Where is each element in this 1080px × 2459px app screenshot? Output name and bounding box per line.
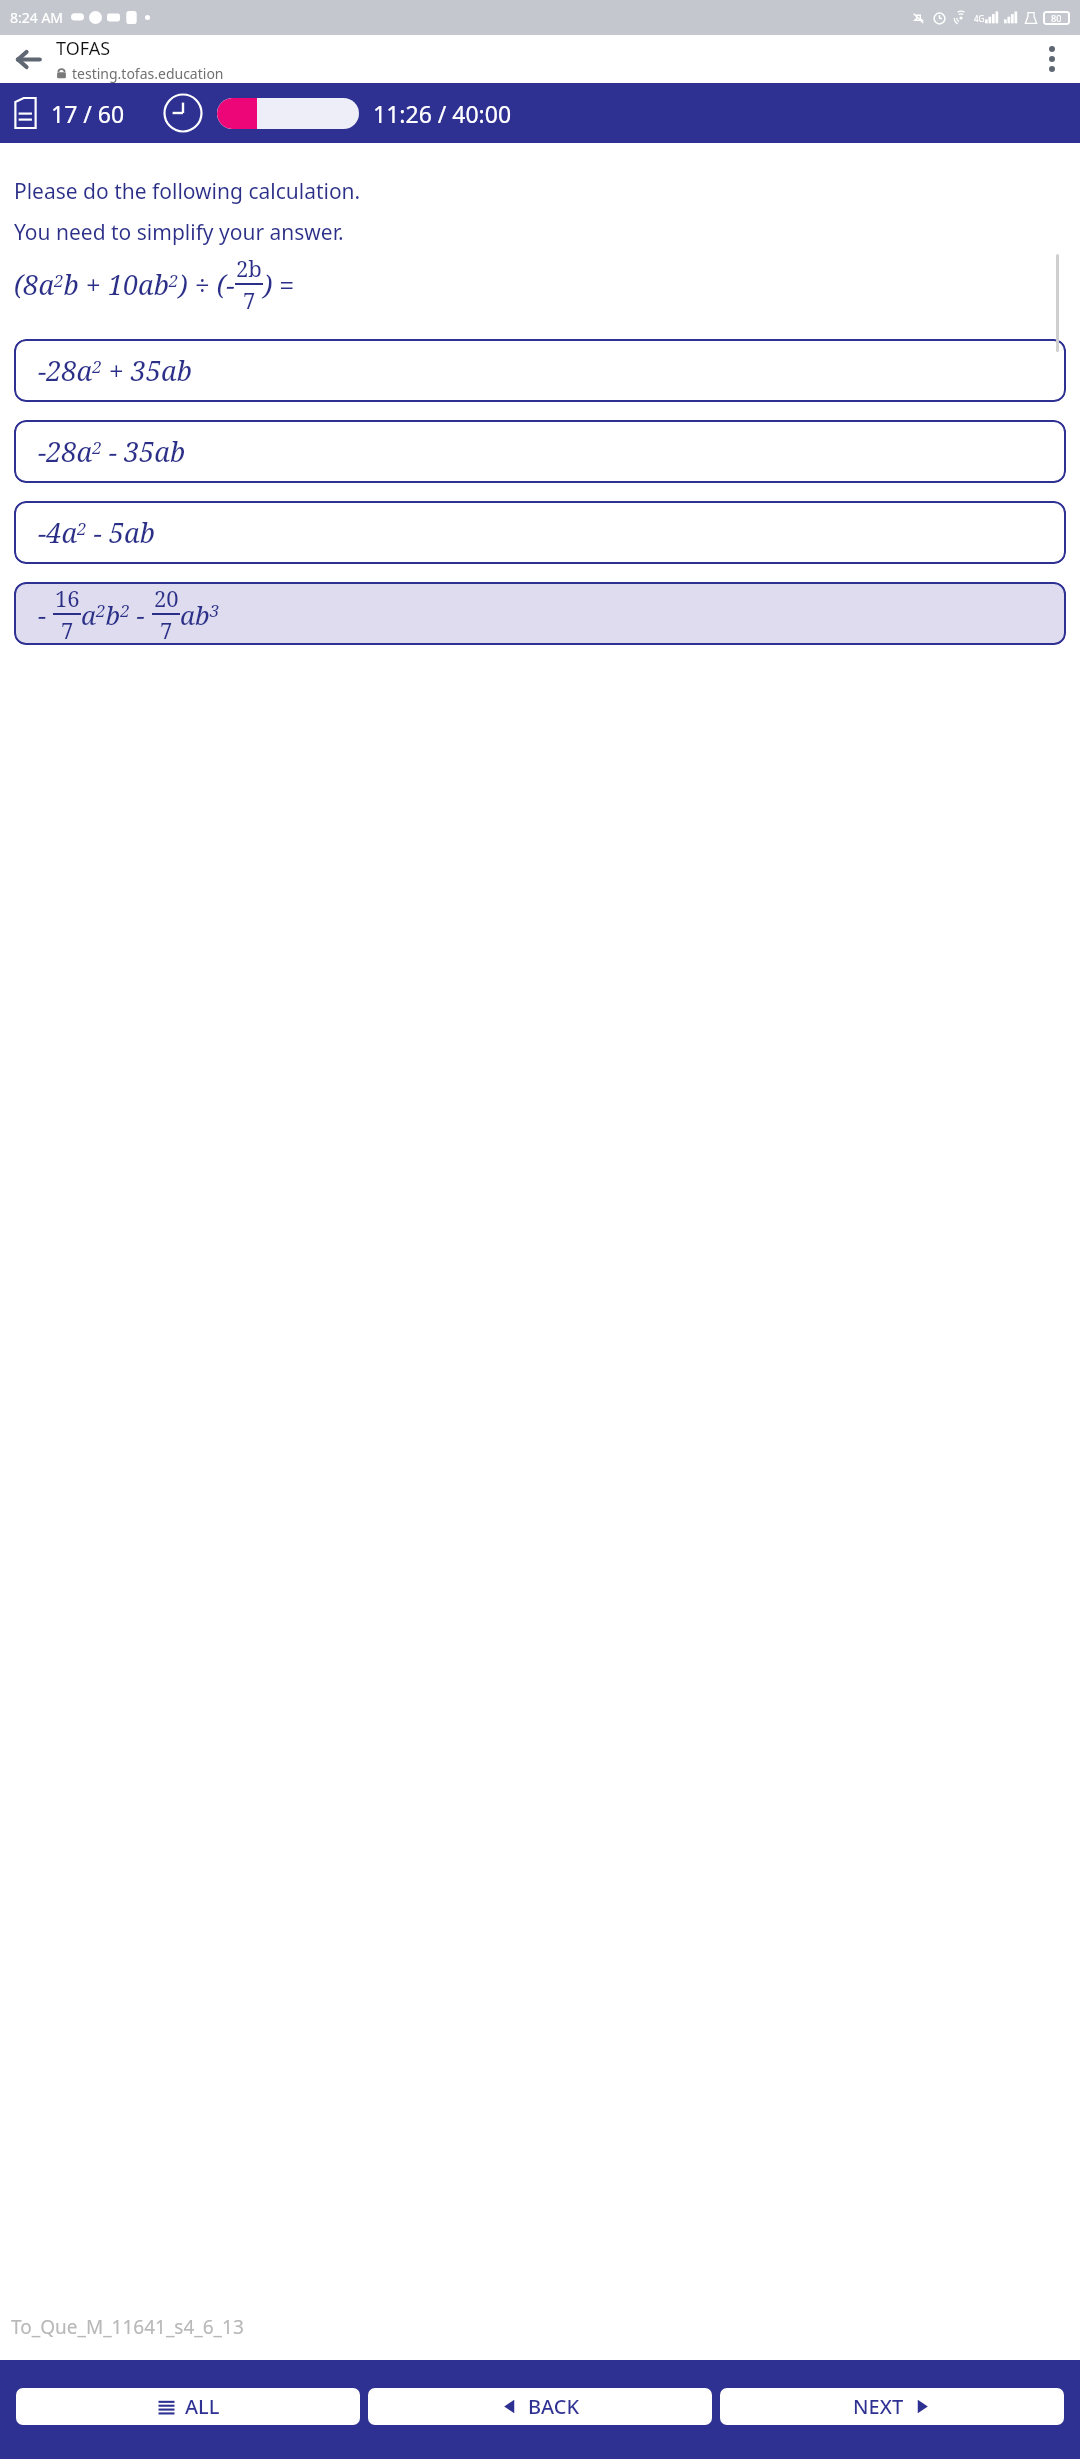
staticText: Please do the following calculation.	[14, 177, 361, 206]
staticText: 16	[55, 583, 80, 613]
staticText: −4a2 − 5ab	[38, 514, 155, 551]
staticText: 2b	[236, 253, 262, 283]
button[interactable]: −28a2 − 35ab	[14, 420, 1066, 483]
staticText: 17 / 60	[51, 98, 125, 129]
staticText: ALL	[185, 2393, 220, 2420]
staticText: 7	[61, 615, 74, 645]
staticText: ) =	[263, 266, 295, 303]
staticText: 4G	[974, 13, 985, 24]
button[interactable]: −28a2 + 35ab	[14, 339, 1066, 402]
staticText: testing.tofas.education	[72, 64, 224, 83]
staticText: To_Que_M_11641_s4_6_13	[11, 2314, 244, 2340]
staticText: 7	[160, 615, 173, 645]
staticText: 7	[243, 285, 256, 315]
staticText: ab3	[180, 597, 220, 632]
staticText: TOFAS	[56, 36, 111, 61]
staticText: 80	[1051, 12, 1062, 24]
staticText: 8:24 AM	[10, 8, 64, 27]
staticText: a2b2 −	[81, 597, 152, 632]
button[interactable]: −	[14, 582, 1066, 645]
staticText: −28a2 − 35ab	[38, 433, 186, 470]
staticText: You need to simplify your answer.	[14, 218, 344, 247]
staticText: 20	[154, 583, 179, 613]
staticText: 11:26 / 40:00	[373, 98, 512, 129]
staticText: (8a2b + 10ab2) ÷ (−	[14, 266, 235, 303]
staticText: −28a2 + 35ab	[38, 352, 192, 389]
button[interactable]: More options	[1024, 35, 1080, 83]
button[interactable]: −4a2 − 5ab	[14, 501, 1066, 564]
staticText: NEXT	[853, 2393, 904, 2420]
staticText: −	[38, 597, 53, 632]
button[interactable]: BACK	[368, 2388, 712, 2425]
button[interactable]: NEXT	[720, 2388, 1064, 2425]
button[interactable]: Back	[0, 35, 56, 83]
button[interactable]: ALL	[16, 2388, 360, 2425]
staticText: BACK	[528, 2393, 580, 2420]
